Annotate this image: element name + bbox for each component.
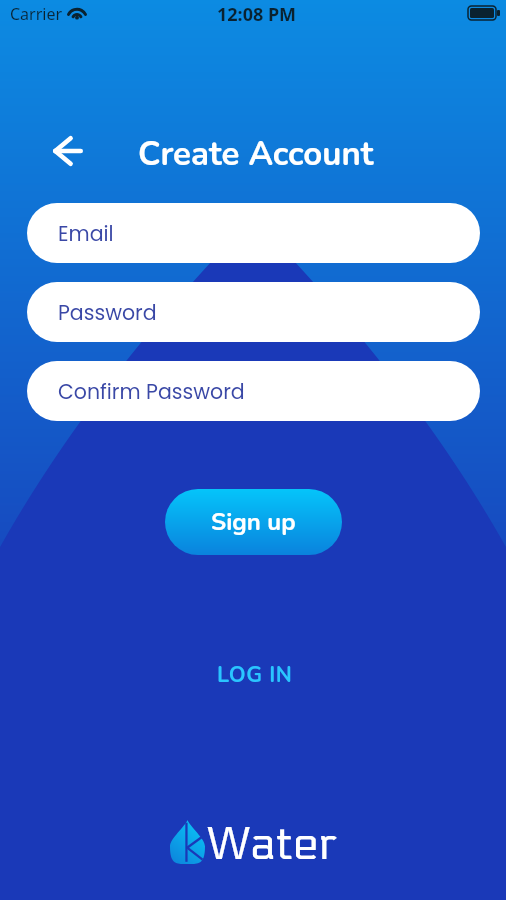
- staticText: Confirm Password: [58, 377, 245, 406]
- button[interactable]: Back: [45, 128, 91, 174]
- staticText: Sign up: [211, 506, 296, 539]
- button[interactable]: Email: [27, 203, 480, 263]
- staticText: Carrier: [10, 3, 63, 25]
- button[interactable]: Sign up: [165, 489, 342, 555]
- staticText: Create Account: [138, 132, 374, 177]
- button[interactable]: LOG IN: [2, 657, 506, 691]
- button[interactable]: Confirm Password: [27, 361, 480, 421]
- staticText: LOG IN: [217, 660, 293, 689]
- staticText: Water: [207, 817, 338, 872]
- staticText: Email: [58, 219, 114, 248]
- button[interactable]: Password: [27, 282, 480, 342]
- staticText: 12:08 PM: [217, 2, 297, 27]
- staticText: Password: [58, 298, 157, 327]
